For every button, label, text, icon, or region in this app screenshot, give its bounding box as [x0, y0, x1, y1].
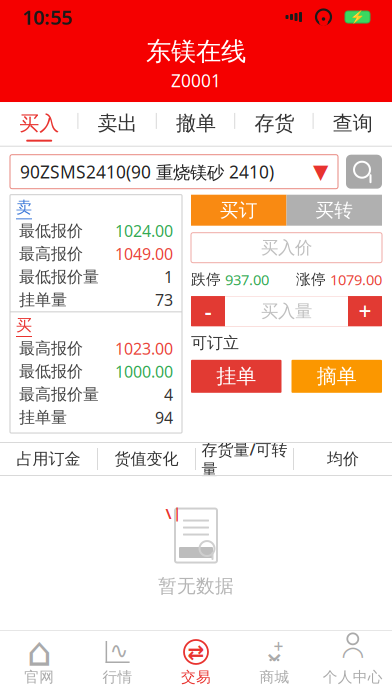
button[interactable]: ⌂: [0, 631, 78, 696]
staticText: 1024.00: [115, 220, 173, 241]
staticText: -: [204, 296, 211, 326]
button[interactable]: ∿: [78, 631, 157, 696]
staticText: 1023.00: [115, 338, 173, 359]
staticText: 4: [164, 384, 173, 405]
button[interactable]: 撤单: [157, 102, 235, 146]
staticText: 买订: [220, 199, 258, 222]
button[interactable]: 买转: [286, 195, 382, 226]
button[interactable]: 买订: [191, 195, 286, 226]
button[interactable]: -: [191, 296, 225, 326]
staticText: 暂无数据: [158, 574, 234, 597]
staticText: 最低报价: [19, 221, 83, 241]
staticText: 1079.00: [326, 270, 382, 289]
button[interactable]: 卖出: [78, 102, 157, 146]
staticText: 挂单量: [19, 408, 67, 427]
staticText: +: [358, 296, 371, 326]
staticText: 最低报价: [19, 362, 83, 381]
staticText: 挂单: [216, 364, 256, 389]
staticText: ⚡: [350, 10, 365, 24]
staticText: ⌂: [27, 629, 52, 675]
staticText: 1049.00: [115, 243, 173, 264]
button[interactable]: 90ZSMS2410(90 重烧镁砂 2410): [10, 155, 338, 189]
staticText: 跌停: [191, 270, 221, 288]
staticText: 行情: [103, 668, 133, 686]
staticText: ⇄: [187, 641, 204, 663]
staticText: 买入: [19, 111, 59, 136]
staticText: 均价: [327, 449, 359, 469]
staticText: 撤单: [176, 111, 216, 136]
staticText: 存货: [254, 111, 294, 136]
button[interactable]: [346, 155, 382, 189]
staticText: \: [165, 503, 171, 523]
staticText: 交易: [181, 668, 211, 686]
staticText: 占用订金: [16, 449, 80, 469]
staticText: 最高报价量: [19, 385, 99, 404]
staticText: ▼: [313, 160, 328, 183]
staticText: 94: [155, 407, 173, 428]
staticText: Z0001: [171, 69, 221, 92]
staticText: 1: [164, 266, 173, 287]
staticText: 1000.00: [115, 361, 173, 382]
button[interactable]: ⇄: [157, 631, 235, 696]
button[interactable]: ◠: [314, 631, 392, 696]
staticText: 买: [16, 315, 32, 335]
button[interactable]: 买入: [0, 102, 78, 146]
staticText: ⌄: [262, 634, 287, 668]
button[interactable]: 查询: [314, 102, 392, 146]
staticText: 买入量: [261, 300, 312, 322]
button[interactable]: 存货: [235, 102, 314, 146]
staticText: 10:55: [22, 4, 72, 30]
staticText: 涨停: [296, 270, 326, 288]
button[interactable]: +: [235, 631, 314, 696]
staticText: 最高报价: [19, 244, 83, 264]
button[interactable]: 挂单: [191, 360, 281, 393]
staticText: |: [173, 504, 180, 522]
staticText: 可订立: [191, 333, 239, 353]
staticText: 摘单: [317, 364, 357, 389]
staticText: 商城: [259, 668, 289, 686]
staticText: 买入价: [261, 237, 312, 258]
staticText: 挂单量: [19, 290, 67, 310]
staticText: 货值变化: [114, 449, 178, 469]
staticText: 卖出: [98, 111, 138, 136]
staticText: 937.00: [221, 270, 269, 289]
staticText: 卖: [16, 198, 32, 217]
button[interactable]: 摘单: [291, 360, 382, 393]
staticText: 东镁在线: [146, 36, 246, 67]
button[interactable]: +: [348, 296, 382, 326]
staticText: +: [273, 634, 283, 657]
staticText: 官网: [24, 668, 54, 686]
staticText: 90ZSMS2410(90 重烧镁砂 2410): [20, 160, 274, 183]
button[interactable]: 买入价: [191, 233, 382, 263]
staticText: 存货量/可转量: [201, 439, 287, 479]
staticText: 买转: [315, 199, 353, 222]
staticText: ◠: [341, 640, 364, 671]
staticText: ∿: [110, 638, 129, 663]
staticText: 查询: [333, 111, 373, 136]
staticText: 最低报价量: [19, 267, 99, 287]
staticText: 最高报价: [19, 339, 83, 358]
staticText: 73: [155, 289, 173, 310]
staticText: 个人中心: [323, 668, 383, 686]
